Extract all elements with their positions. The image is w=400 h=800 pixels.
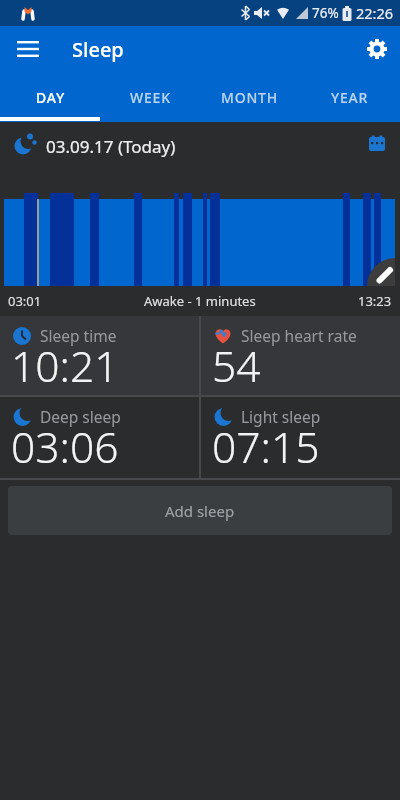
staticText: DAY bbox=[36, 88, 65, 107]
button[interactable]: Light sleep bbox=[201, 397, 400, 478]
button[interactable]: Sleep heart rate bbox=[201, 316, 400, 395]
button[interactable]: Deep sleep bbox=[0, 397, 199, 478]
staticText: 03.09.17 (Today) bbox=[46, 135, 176, 158]
staticText: Sleep heart rate bbox=[241, 325, 357, 346]
staticText: WEEK bbox=[130, 88, 171, 107]
staticText: 07:15 bbox=[212, 418, 320, 476]
button[interactable]: DAY bbox=[0, 72, 100, 122]
staticText: 54 bbox=[212, 337, 261, 395]
staticText: 10:21 bbox=[11, 337, 119, 395]
staticText: 22:26 bbox=[356, 3, 394, 23]
staticText: 03:06 bbox=[11, 418, 119, 476]
staticText: YEAR bbox=[331, 88, 369, 107]
staticText: Awake - 1 minutes bbox=[144, 292, 256, 310]
button[interactable]: Sleep time bbox=[0, 316, 199, 395]
staticText: 03:01 bbox=[8, 292, 42, 310]
staticText: 76% bbox=[312, 4, 339, 22]
staticText: Deep sleep bbox=[40, 406, 121, 427]
staticText: 13:23 bbox=[358, 292, 392, 310]
button[interactable]: WEEK bbox=[100, 72, 200, 122]
button[interactable] bbox=[358, 126, 396, 160]
staticText: MONTH bbox=[221, 88, 279, 107]
staticText: Add sleep bbox=[165, 501, 235, 521]
button[interactable]: MONTH bbox=[200, 72, 300, 122]
staticText: Sleep bbox=[72, 36, 124, 63]
staticText: Light sleep bbox=[241, 406, 321, 427]
button[interactable] bbox=[353, 26, 400, 72]
staticText: Sleep time bbox=[40, 325, 117, 346]
button[interactable]: YEAR bbox=[300, 72, 400, 122]
button[interactable] bbox=[0, 26, 48, 72]
button[interactable]: Add sleep bbox=[8, 486, 392, 535]
